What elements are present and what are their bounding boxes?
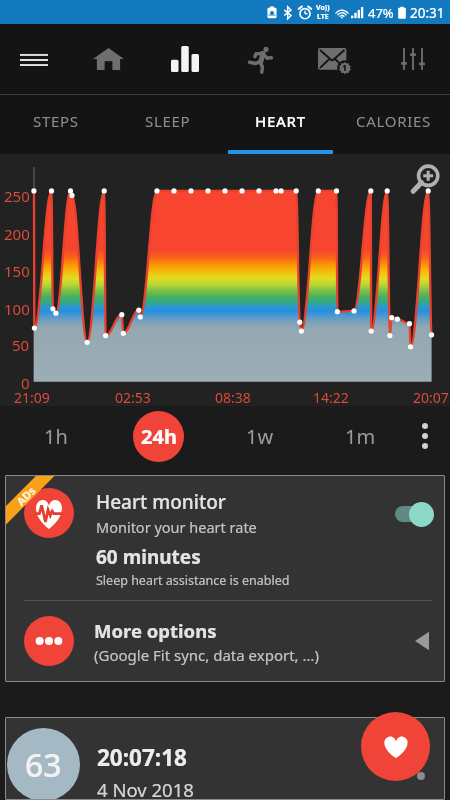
staticText: LTE bbox=[317, 12, 329, 22]
button[interactable]: Zoom in bbox=[404, 158, 446, 200]
button[interactable]: Messages bbox=[300, 24, 375, 94]
staticText: 150 bbox=[4, 261, 30, 281]
button[interactable]: CALORIES bbox=[337, 95, 450, 154]
button[interactable]: More options bbox=[408, 419, 442, 453]
staticText: ADs bbox=[13, 482, 39, 509]
staticText: 200 bbox=[4, 224, 30, 244]
staticText: 14:22 bbox=[313, 388, 349, 407]
staticText: STEPS bbox=[33, 111, 79, 131]
button[interactable]: STEPS bbox=[0, 95, 112, 154]
staticText: 4 Nov 2018 bbox=[97, 777, 194, 800]
button[interactable]: 1m bbox=[334, 412, 386, 460]
button[interactable]: Activity bbox=[225, 24, 300, 94]
button[interactable]: 1h bbox=[30, 412, 82, 460]
button[interactable]: SLEEP bbox=[112, 95, 224, 154]
staticText: HEART bbox=[255, 111, 306, 131]
staticText: SLEEP bbox=[145, 111, 191, 131]
button[interactable]: Settings bbox=[375, 24, 450, 94]
staticText: More options bbox=[94, 618, 217, 643]
button[interactable]: Menu bbox=[0, 24, 75, 94]
button[interactable]: 63 bbox=[5, 717, 445, 800]
staticText: 1h bbox=[44, 423, 68, 450]
staticText: 50 bbox=[12, 335, 30, 355]
staticText: 60 minutes bbox=[96, 544, 201, 570]
staticText: (Google Fit sync, data export, …) bbox=[94, 645, 319, 665]
staticText: 1m bbox=[345, 423, 376, 450]
staticText: Monitor your heart rate bbox=[96, 517, 257, 537]
staticText: 250 bbox=[4, 186, 30, 206]
staticText: 100 bbox=[4, 299, 30, 319]
button[interactable]: Heart monitor bbox=[5, 475, 445, 600]
staticText: 24h bbox=[141, 423, 177, 450]
staticText: Vo)) bbox=[316, 3, 330, 13]
staticText: 20:07:18 bbox=[97, 742, 187, 773]
button[interactable]: Charts bbox=[150, 24, 225, 94]
staticText: 02:53 bbox=[115, 388, 151, 407]
button[interactable]: 24h bbox=[133, 411, 184, 462]
staticText: 0 bbox=[21, 373, 30, 393]
staticText: 08:38 bbox=[215, 388, 251, 407]
staticText: CALORIES bbox=[356, 111, 431, 131]
button[interactable]: 1w bbox=[234, 412, 286, 460]
button[interactable] bbox=[395, 502, 433, 527]
button[interactable]: HEART bbox=[224, 95, 337, 154]
button[interactable]: More options bbox=[5, 601, 445, 681]
staticText: 20:07 bbox=[413, 388, 449, 407]
button[interactable]: Measure heart rate bbox=[361, 712, 430, 781]
staticText: 47% bbox=[368, 4, 394, 22]
staticText: 20:31 bbox=[410, 4, 445, 22]
button[interactable]: Home bbox=[75, 24, 150, 94]
staticText: 1w bbox=[246, 423, 274, 450]
staticText: 63 bbox=[25, 743, 62, 787]
staticText: Heart monitor bbox=[96, 489, 226, 515]
staticText: 21:09 bbox=[14, 388, 50, 407]
staticText: Sleep heart assistance is enabled bbox=[96, 572, 290, 589]
